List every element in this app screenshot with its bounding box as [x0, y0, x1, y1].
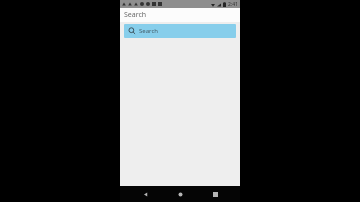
button[interactable]: Recent apps — [205, 186, 225, 202]
staticText: 2:41 — [228, 1, 238, 8]
button[interactable]: Search — [124, 24, 236, 38]
button[interactable]: Back — [135, 186, 155, 202]
staticText: Search — [139, 27, 158, 35]
button[interactable]: Home — [170, 186, 190, 202]
staticText: Search — [124, 10, 147, 20]
other: Search — [128, 27, 136, 35]
